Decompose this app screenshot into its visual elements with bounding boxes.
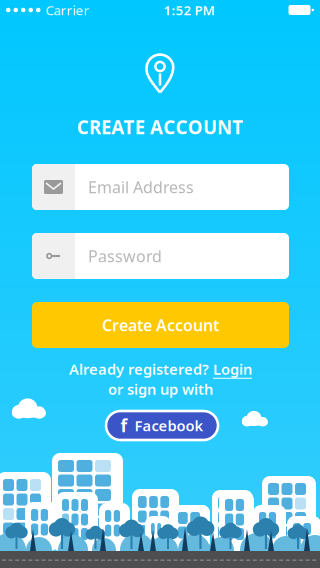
staticText: 1:52 PM — [163, 1, 214, 19]
staticText: or sign up with — [108, 379, 213, 399]
button[interactable]: Login — [213, 359, 252, 379]
button[interactable]: f — [106, 411, 218, 440]
staticText: Login — [213, 359, 252, 379]
staticText: Create Account — [102, 314, 219, 336]
staticText: CREATE ACCOUNT — [77, 115, 243, 139]
button[interactable]: Create Account — [32, 302, 289, 348]
staticText: Already registered? — [69, 359, 209, 379]
staticText: Password — [88, 245, 162, 267]
staticText: Carrier — [45, 1, 89, 19]
staticText: Facebook — [134, 416, 203, 435]
staticText: f — [120, 414, 127, 437]
staticText: Email Address — [88, 176, 194, 198]
